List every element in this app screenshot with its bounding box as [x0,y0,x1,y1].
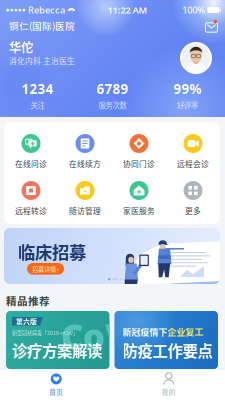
staticText: 更多 [185,205,201,216]
button[interactable]: 远程会诊 [166,134,220,167]
staticText: 首页 [49,387,63,397]
button[interactable]: 临床招募 [4,228,220,284]
staticText: 随访管理 [69,205,101,216]
button[interactable]: CoV [6,311,109,369]
staticText: Rebecca [26,4,65,16]
staticText: 防疫工作要点 [122,339,212,361]
staticText: 第六版 [16,316,37,326]
staticText: CoV [61,313,129,359]
staticText: ••••• [6,4,26,16]
staticText: 新冠疫情下 [122,325,167,338]
staticText: 精品推荐 [6,293,50,308]
staticText: 华佗 [9,38,33,56]
staticText: 消化内科 主治医生 [9,55,75,66]
button[interactable]: 远程转诊 [4,181,58,214]
staticText: 铜仁(国际)医院 [9,18,75,32]
button[interactable]: 我的 [112,370,225,400]
button[interactable]: 新冠疫情下 [114,311,218,369]
button[interactable]: 在线续方 [58,134,112,167]
button[interactable]: 消息 [202,18,219,33]
staticText: 11:22 AM [108,4,148,16]
staticText: 关注 [30,100,44,110]
staticText: 协同门诊 [123,158,155,169]
staticText: 企业复工 [167,325,203,338]
button[interactable]: 在线问诊 [4,134,58,167]
staticText: 远程会诊 [177,158,209,169]
staticText: 在线问诊 [15,158,47,169]
staticText: 6789 [96,80,128,98]
button[interactable]: 首页 [0,370,112,400]
staticText: 1234 [21,80,53,98]
button[interactable]: 更多 [166,181,220,214]
staticText: 家医服务 [123,205,155,216]
staticText: 在线续方 [69,158,101,169]
button[interactable]: 家医服务 [112,181,166,214]
staticText: 我的 [162,387,176,397]
staticText: 诊疗方案解读 [12,339,102,361]
staticText: 99% [173,80,201,98]
staticText: 服务次数 [98,100,126,110]
staticText: 临床招募 [18,239,86,264]
staticText: 100% [182,4,205,16]
staticText: 远程转诊 [15,205,47,216]
staticText: 新型冠状病毒「2019-nCoV」 [12,329,78,336]
button[interactable]: 协同门诊 [112,134,166,167]
staticText: 招募详情 › [32,264,59,273]
staticText: 好评率 [177,100,198,110]
button[interactable]: 随访管理 [58,181,112,214]
